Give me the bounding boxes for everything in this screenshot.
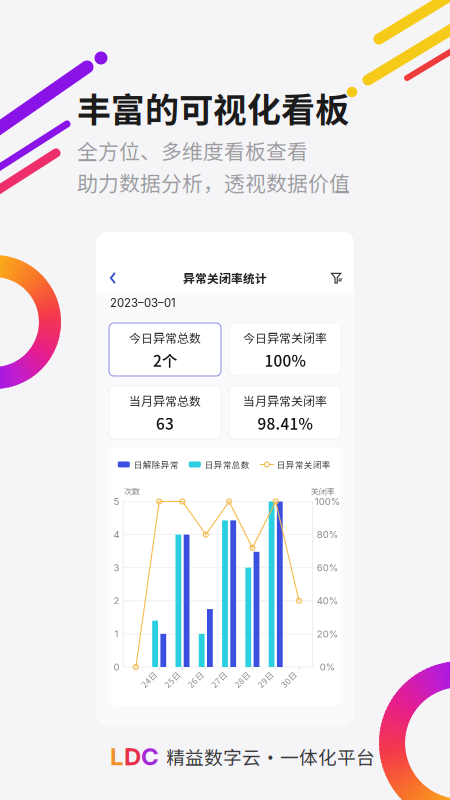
- staticText: 异常关闭率统计: [183, 269, 267, 286]
- staticText: 今日异常关闭率: [243, 329, 327, 346]
- staticText: 98.41%: [257, 412, 312, 434]
- button[interactable]: 今日异常关闭率: [229, 323, 341, 376]
- staticText: 5: [113, 496, 119, 507]
- staticText: 1: [114, 628, 118, 640]
- staticText: 2023–03–01: [110, 296, 176, 310]
- staticText: 27日: [210, 673, 228, 685]
- staticText: 100%: [264, 349, 305, 371]
- staticText: 关闭率: [310, 485, 334, 497]
- staticText: 63: [156, 412, 174, 434]
- button[interactable]: Filter: [322, 261, 352, 295]
- staticText: 3: [113, 562, 119, 573]
- staticText: 日异常关闭率: [277, 458, 331, 471]
- staticText: 2: [113, 595, 119, 607]
- staticText: 28日: [233, 673, 251, 685]
- staticText: 25日: [163, 673, 181, 685]
- button[interactable]: 今日异常总数: [109, 323, 221, 376]
- staticText: 2个: [153, 349, 177, 371]
- staticText: 当月异常总数: [129, 392, 201, 409]
- staticText: 0: [113, 661, 119, 673]
- staticText: 当月异常关闭率: [243, 392, 327, 409]
- staticText: 60%: [317, 562, 338, 573]
- staticText: 日异常总数: [205, 458, 250, 471]
- staticText: 40%: [317, 595, 338, 607]
- staticText: 日解除异常: [134, 458, 179, 471]
- staticText: 助力数据分析，透视数据价值: [77, 167, 350, 197]
- staticText: 次数: [124, 485, 140, 497]
- staticText: 今日异常总数: [129, 329, 201, 346]
- staticText: 80%: [317, 529, 338, 540]
- staticText: 24日: [140, 673, 158, 685]
- staticText: C: [141, 742, 159, 771]
- staticText: 30日: [280, 673, 298, 685]
- staticText: D: [124, 742, 141, 771]
- staticText: L: [110, 742, 124, 771]
- staticText: 0%: [320, 661, 335, 673]
- staticText: 精益数字云·一体化平台: [166, 743, 375, 770]
- staticText: 29日: [256, 673, 274, 685]
- staticText: 全方位、多维度看板查看: [77, 135, 308, 165]
- staticText: 100%: [315, 496, 340, 507]
- button[interactable]: 当月异常总数: [109, 386, 221, 439]
- staticText: 20%: [317, 628, 338, 640]
- button[interactable]: Back: [98, 261, 128, 295]
- button[interactable]: 当月异常关闭率: [229, 386, 341, 439]
- staticText: 丰富的可视化看板: [77, 83, 349, 132]
- staticText: 4: [113, 529, 119, 540]
- staticText: 26日: [186, 673, 204, 685]
